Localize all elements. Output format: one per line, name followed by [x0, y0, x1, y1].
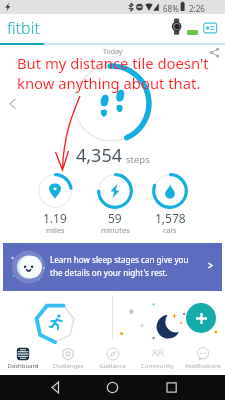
staticText: know anything about that.	[17, 73, 201, 93]
button[interactable]: Learn how sleep stages can give you	[3, 243, 222, 291]
button[interactable]: 1.19	[26, 172, 84, 234]
staticText: Dashboard	[7, 362, 39, 370]
button[interactable]: Add	[186, 303, 216, 333]
staticText: 1.19	[43, 210, 67, 226]
staticText: Community	[141, 362, 174, 370]
staticText: 59	[108, 210, 122, 226]
staticText: miles	[46, 225, 65, 235]
staticText: But my distance tile doesn't	[17, 53, 209, 73]
button[interactable]: Challenges	[45, 344, 90, 377]
button[interactable]: 4,354	[0, 0, 225, 400]
staticText: 68%	[163, 3, 179, 14]
button[interactable]: Dashboard	[0, 344, 45, 377]
staticText: 2:26	[189, 3, 205, 14]
staticText: minutes	[101, 225, 130, 235]
staticText: 4,354	[76, 143, 123, 168]
button[interactable]: 59	[86, 172, 144, 234]
button[interactable]: Device	[171, 18, 185, 32]
button[interactable]: Share	[209, 47, 220, 58]
button[interactable]: Account	[203, 22, 217, 36]
staticText: Challenges	[52, 362, 84, 370]
staticText: Guidance	[99, 362, 126, 370]
staticText: cals	[163, 225, 177, 235]
staticText: fitbit	[7, 17, 40, 39]
staticText: Today	[103, 47, 123, 57]
staticText: steps	[126, 153, 150, 166]
button[interactable]: 1,578	[141, 172, 199, 234]
staticText: 1,578	[155, 210, 186, 226]
button[interactable]: Community	[135, 344, 180, 377]
button[interactable]: Notifications	[180, 344, 225, 377]
staticText: Learn how sleep stages can give you	[50, 254, 189, 265]
staticText: the details on your night's rest.	[50, 267, 168, 278]
button[interactable]: Guidance	[90, 344, 135, 377]
staticText: Notifications	[185, 362, 221, 370]
